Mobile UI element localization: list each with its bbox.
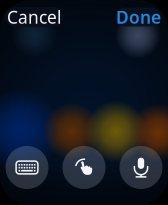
button[interactable]: Dictation	[119, 146, 162, 189]
button[interactable]: Done	[116, 7, 161, 26]
button[interactable]: Scribble	[62, 146, 105, 189]
staticText: Done	[116, 5, 161, 28]
button[interactable]: Cancel	[5, 7, 63, 27]
button[interactable]: Keyboard	[5, 146, 48, 189]
staticText: Cancel	[7, 5, 61, 28]
